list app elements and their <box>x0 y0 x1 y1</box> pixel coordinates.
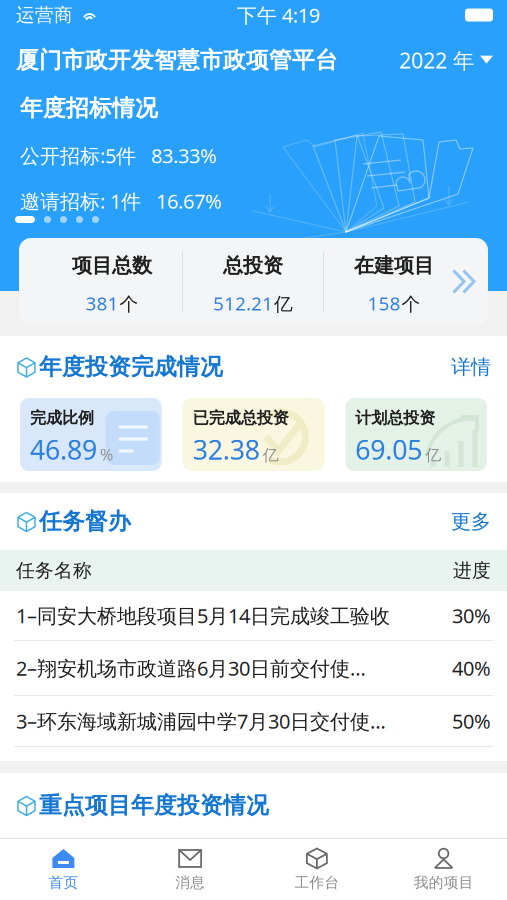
button[interactable]: 首页 <box>0 839 127 900</box>
button[interactable]: 详情 <box>435 349 491 385</box>
staticText: 50% <box>452 708 491 734</box>
button[interactable]: 工作台 <box>253 839 380 900</box>
staticText: 消息 <box>175 873 205 891</box>
staticText: 详情 <box>451 355 491 379</box>
staticText: 下午 4:19 <box>237 2 320 28</box>
staticText: 30% <box>452 602 491 629</box>
button[interactable]: 2022 年 <box>399 38 493 82</box>
staticText: 32.38 <box>193 432 260 467</box>
staticText: 40% <box>452 655 491 681</box>
staticText: 亿 <box>425 445 441 465</box>
button[interactable]: 更多 <box>435 503 491 540</box>
staticText: 我的项目 <box>414 873 474 891</box>
staticText: % <box>100 444 113 465</box>
staticText: 首页 <box>48 873 78 891</box>
staticText: 2022 年 <box>399 46 474 74</box>
staticText: 厦门市政开发智慧市政项管平台 <box>16 46 338 74</box>
staticText: 重点项目年度投资情况 <box>39 792 269 819</box>
staticText: 46.89 <box>30 432 97 467</box>
staticText: 任务督办 <box>39 508 131 535</box>
staticText: 总投资 <box>223 253 283 278</box>
staticText: 任务名称 <box>16 559 92 582</box>
staticText: 项目总数 <box>72 253 152 278</box>
staticText: 个 <box>119 293 138 316</box>
staticText: 邀请招标: 1件 16.67% <box>20 188 222 214</box>
button[interactable]: 3–环东海域新城浦园中学7月30日交付使… <box>0 696 507 746</box>
staticText: 年度投资完成情况 <box>39 353 223 381</box>
staticText: 运营商 <box>16 3 73 26</box>
staticText: 亿 <box>263 445 279 465</box>
staticText: 512.21 <box>213 291 273 316</box>
button[interactable]: 我的项目 <box>380 839 507 900</box>
staticText: 158 <box>367 291 400 316</box>
staticText: 3–环东海域新城浦园中学7月30日交付使… <box>16 708 386 734</box>
staticText: 个 <box>401 293 420 316</box>
staticText: 更多 <box>451 509 491 534</box>
staticText: 已完成总投资 <box>193 408 289 428</box>
staticText: 工作台 <box>294 873 339 891</box>
staticText: 2–翔安机场市政道路6月30日前交付使… <box>16 655 366 681</box>
button[interactable]: 1–同安大桥地段项目5月14日完成竣工验收 <box>0 591 507 640</box>
staticText: 计划总投资 <box>355 408 435 428</box>
staticText: 完成比例 <box>30 408 94 428</box>
staticText: 381 <box>85 291 118 316</box>
staticText: 公开招标:5件 83.33% <box>20 142 217 169</box>
button[interactable]: 消息 <box>127 839 254 900</box>
staticText: 进度 <box>453 559 491 582</box>
button[interactable]: 2–翔安机场市政道路6月30日前交付使… <box>0 641 507 695</box>
staticText: 69.05 <box>355 432 422 467</box>
staticText: 年度招标情况 <box>20 94 158 122</box>
staticText: 1–同安大桥地段项目5月14日完成竣工验收 <box>16 602 390 629</box>
staticText: 亿 <box>274 293 293 316</box>
staticText: 在建项目 <box>354 253 434 278</box>
